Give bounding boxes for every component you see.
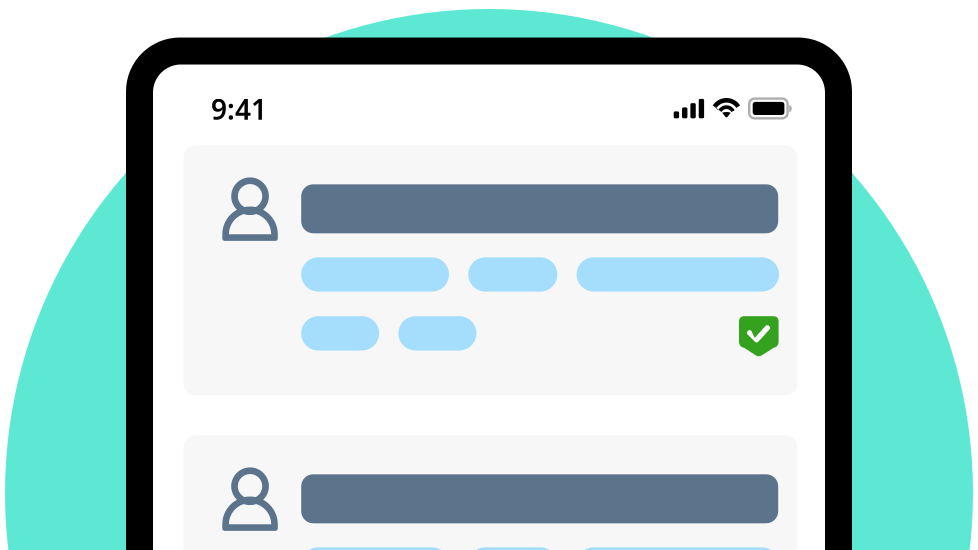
staticText: 9:41	[211, 90, 267, 127]
button[interactable]	[183, 145, 797, 395]
button[interactable]	[183, 435, 797, 550]
button[interactable]: Verified	[739, 316, 779, 358]
